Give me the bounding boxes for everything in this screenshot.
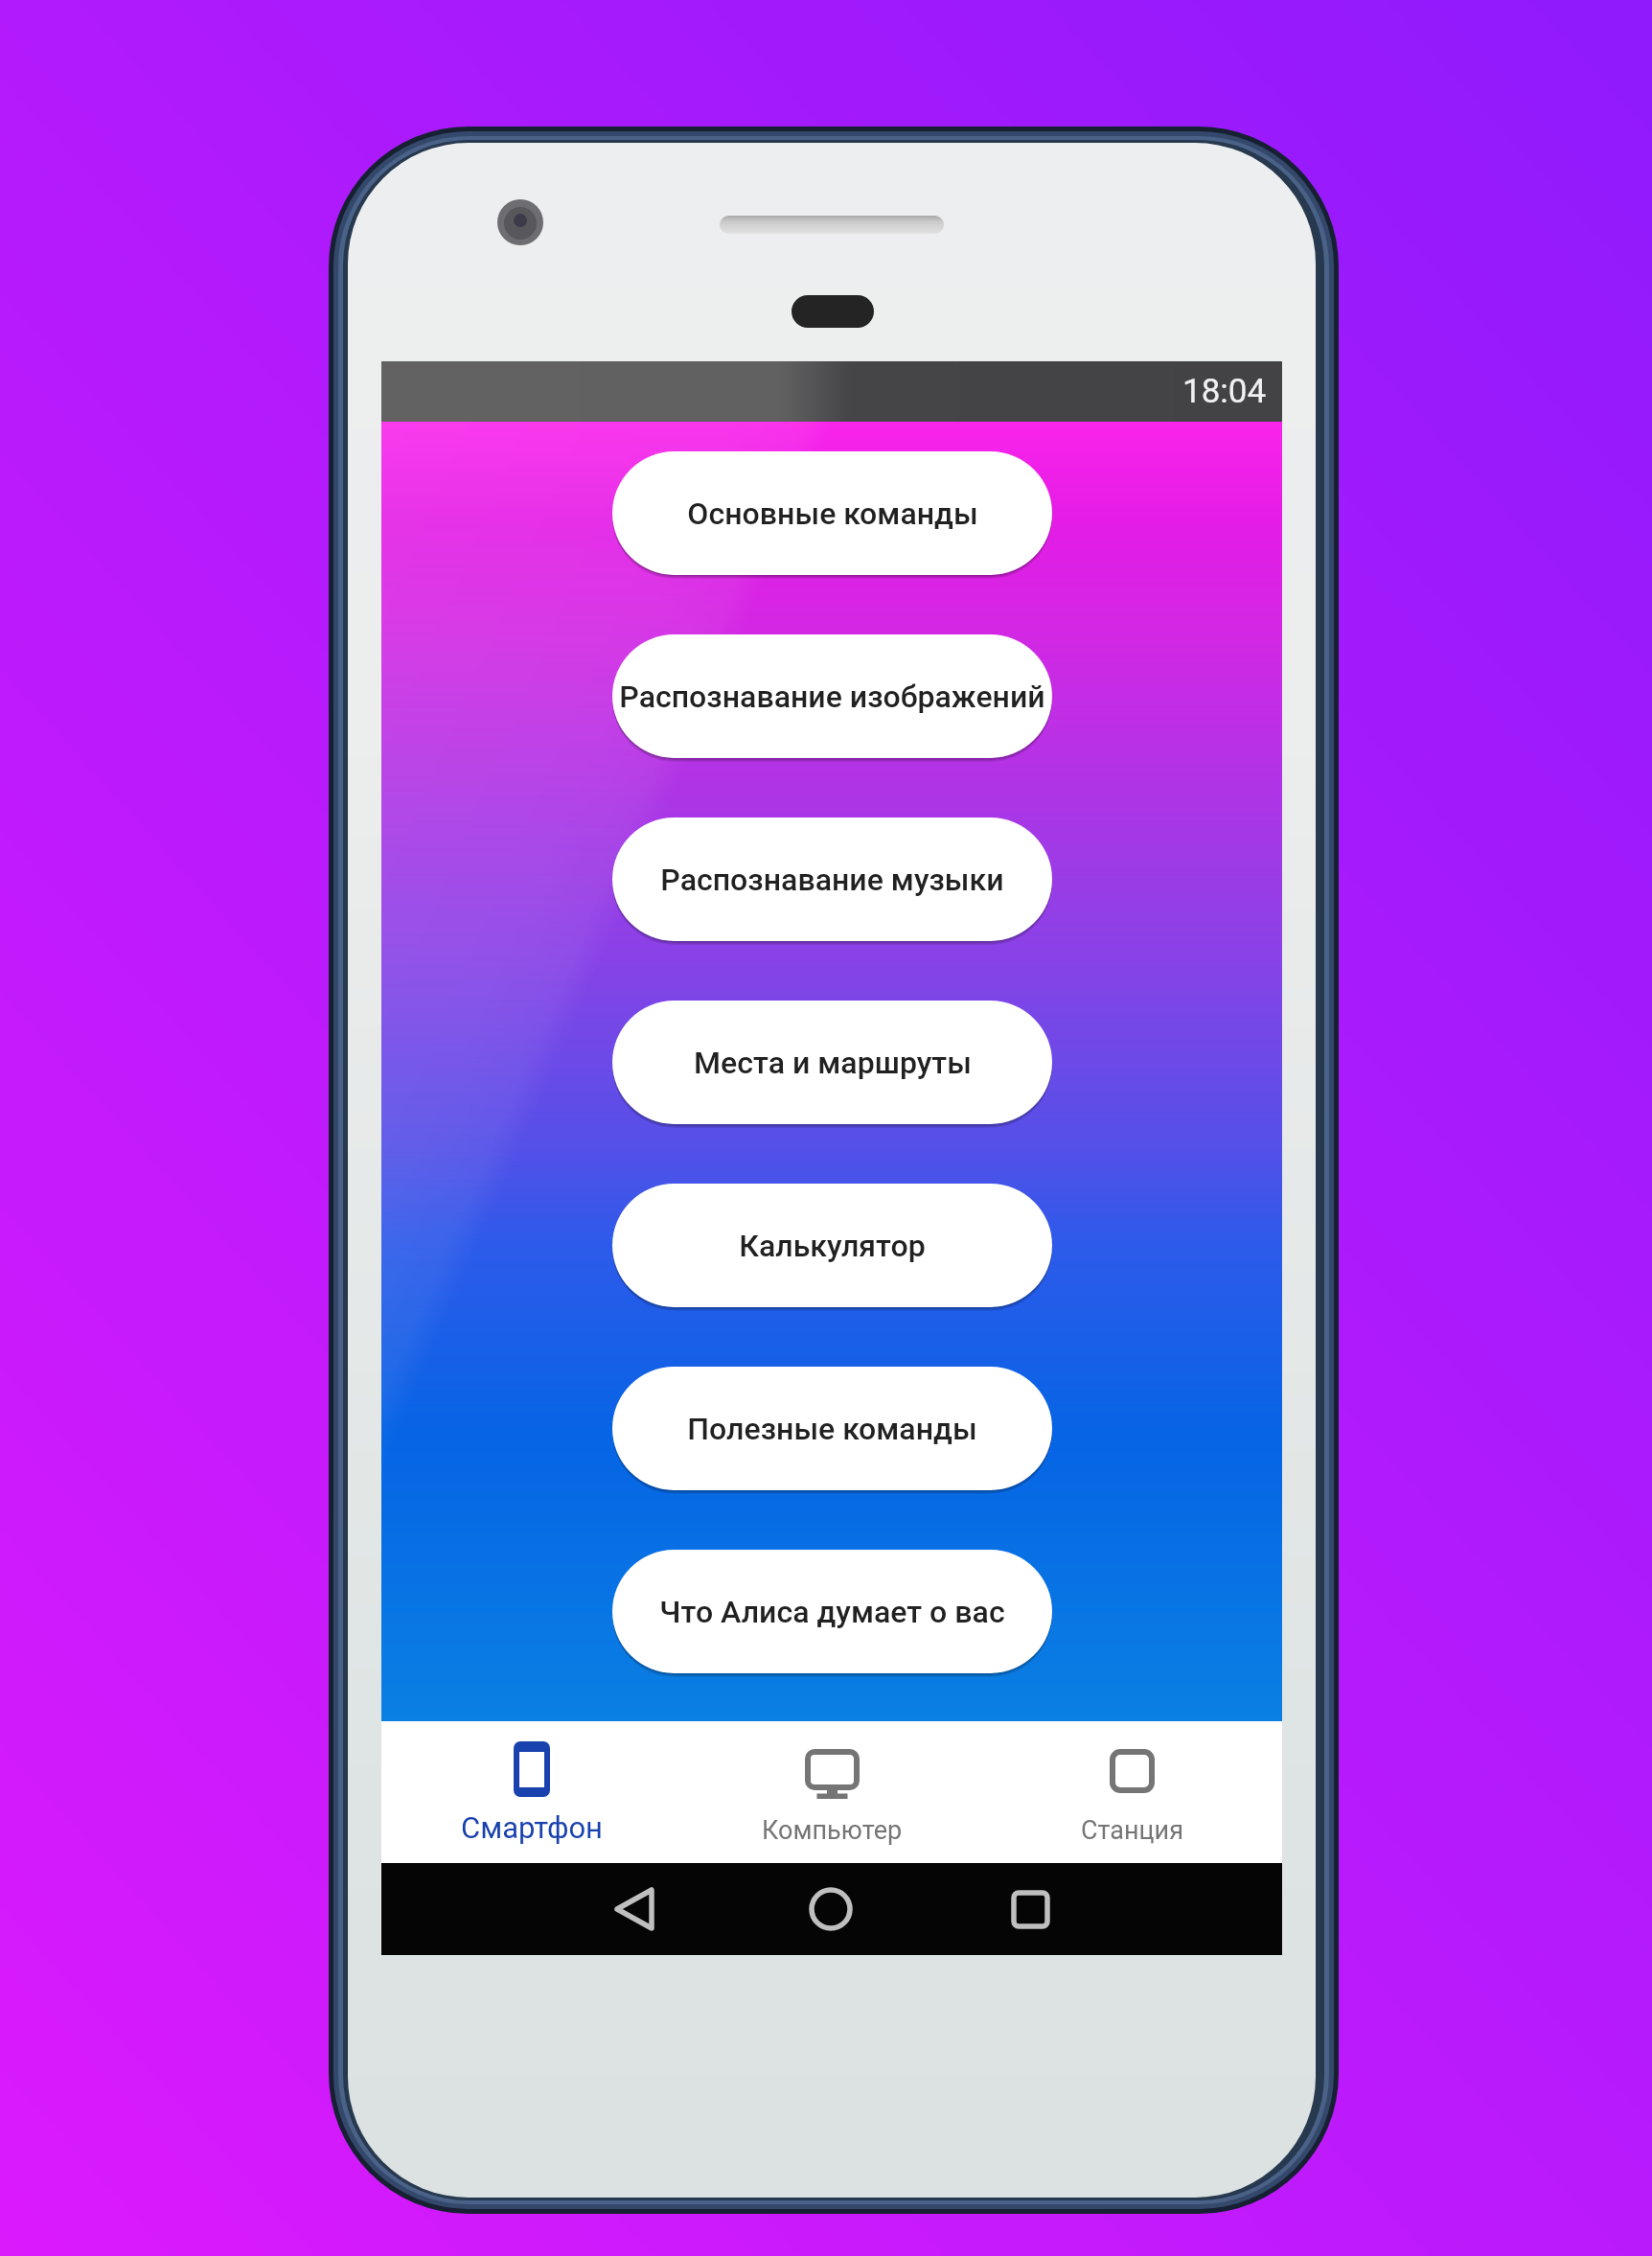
button[interactable]: Home	[792, 1871, 869, 1947]
staticText: Места и маршруты	[694, 1045, 972, 1081]
staticText: Основные команды	[687, 495, 978, 532]
button[interactable]: Полезные команды	[612, 1367, 1052, 1490]
button[interactable]: Recents	[992, 1871, 1068, 1947]
staticText: Смартфон	[461, 1810, 603, 1845]
button[interactable]: Распознавание музыки	[612, 817, 1052, 941]
button[interactable]: Back	[596, 1871, 673, 1947]
button[interactable]: Места и маршруты	[612, 1001, 1052, 1124]
staticText: Калькулятор	[739, 1228, 926, 1264]
button[interactable]: Станция	[982, 1721, 1282, 1863]
button[interactable]: Калькулятор	[612, 1184, 1052, 1307]
staticText: Распознавание изображений	[619, 679, 1045, 715]
staticText: 18:04	[1182, 372, 1267, 411]
staticText: Станция	[1081, 1815, 1184, 1846]
button[interactable]: Основные команды	[612, 451, 1052, 575]
staticText: Компьютер	[762, 1815, 903, 1846]
button[interactable]: Смартфон	[381, 1721, 682, 1863]
button[interactable]: Распознавание изображений	[612, 634, 1052, 758]
staticText: Что Алиса думает о вас	[659, 1594, 1005, 1630]
button[interactable]: Компьютер	[682, 1721, 982, 1863]
staticText: Полезные команды	[687, 1411, 977, 1447]
button[interactable]: Что Алиса думает о вас	[612, 1550, 1052, 1673]
staticText: Распознавание музыки	[660, 862, 1004, 898]
